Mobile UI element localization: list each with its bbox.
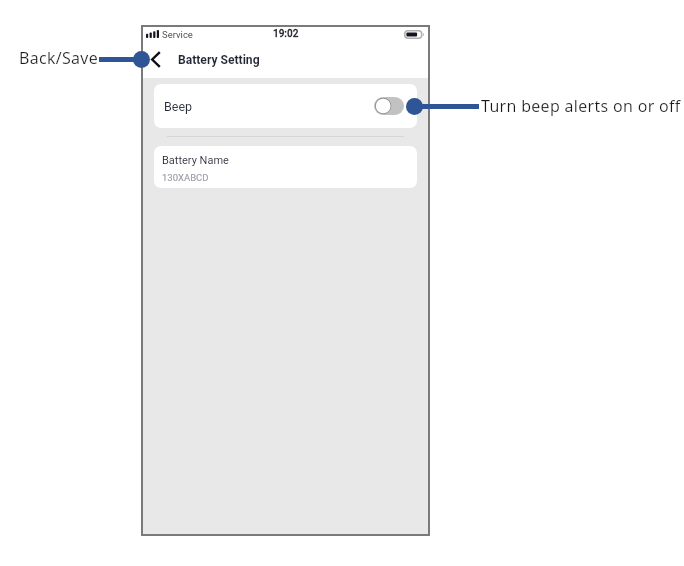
staticText: Back/Save: [19, 47, 98, 69]
staticText: Service: [162, 29, 193, 40]
button[interactable]: Beep: [154, 84, 417, 128]
staticText: Turn beep alerts on or off: [481, 95, 681, 117]
button[interactable]: Beep toggle, off: [374, 97, 404, 115]
staticText: 130XABCD: [162, 172, 209, 183]
staticText: Battery Setting: [178, 53, 260, 67]
button[interactable]: Battery Name: [154, 146, 417, 188]
staticText: Battery Name: [162, 154, 229, 167]
staticText: Beep: [164, 99, 193, 114]
button[interactable]: Back: [147, 48, 164, 71]
staticText: 19:02: [273, 28, 299, 40]
